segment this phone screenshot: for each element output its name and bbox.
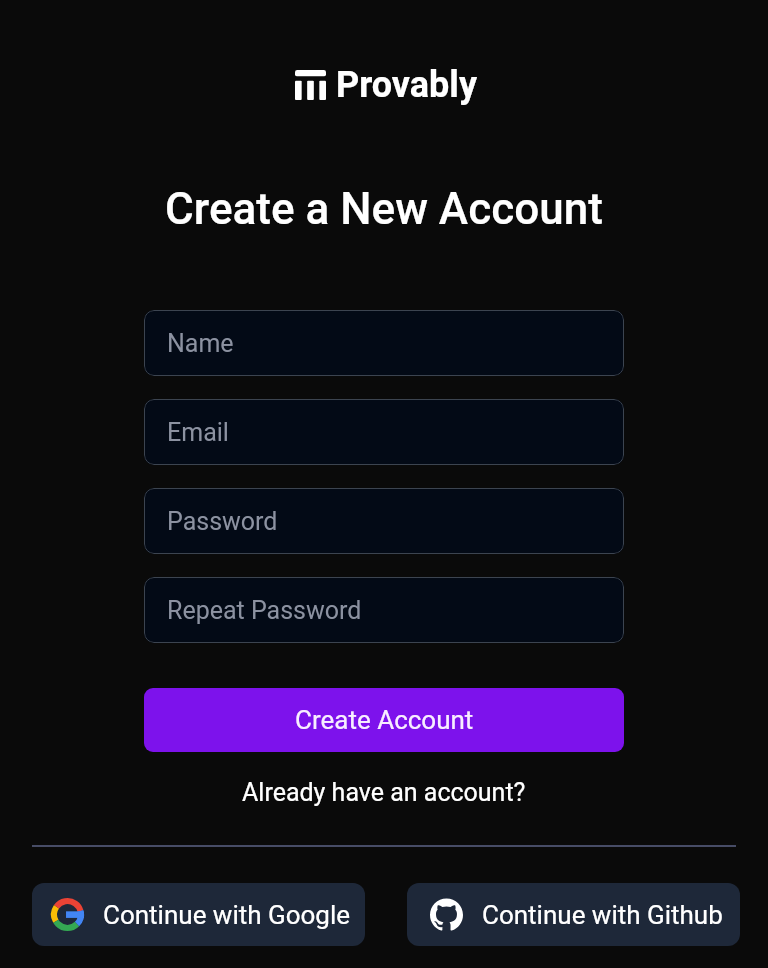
other: GitHub logo bbox=[430, 898, 463, 931]
staticText: Already have an account? bbox=[242, 778, 526, 807]
button[interactable]: Password bbox=[144, 488, 624, 554]
button[interactable]: Google logo bbox=[32, 883, 365, 946]
staticText: Repeat Password bbox=[167, 596, 362, 625]
staticText: Create a New Account bbox=[0, 183, 768, 235]
staticText: Continue with Google bbox=[103, 900, 351, 930]
staticText: Name bbox=[167, 329, 234, 358]
staticText: Password bbox=[167, 507, 278, 536]
button[interactable]: Email bbox=[144, 399, 624, 465]
staticText: Create Account bbox=[295, 705, 474, 735]
button[interactable]: Name bbox=[144, 310, 624, 376]
staticText: Provably bbox=[336, 64, 477, 106]
staticText: Continue with Github bbox=[482, 900, 723, 930]
other: Google logo bbox=[51, 898, 84, 931]
button[interactable]: Create Account bbox=[144, 688, 624, 752]
button[interactable]: Repeat Password bbox=[144, 577, 624, 643]
other: Provably logo bbox=[295, 70, 326, 100]
button[interactable]: GitHub logo bbox=[407, 883, 740, 946]
staticText: Email bbox=[167, 418, 229, 447]
button[interactable]: Already have an account? bbox=[0, 778, 768, 807]
